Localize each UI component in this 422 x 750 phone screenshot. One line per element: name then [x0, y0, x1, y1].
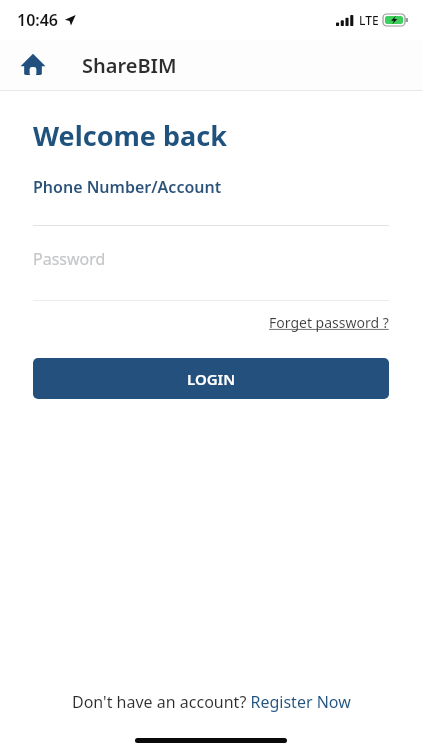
button[interactable]: Phone Number/Account [0, 176, 422, 226]
staticText: Password [33, 248, 106, 270]
button[interactable]: Forget password ? [269, 313, 389, 332]
button[interactable]: Home [12, 44, 54, 86]
button[interactable]: LOGIN [33, 358, 389, 399]
button[interactable]: Password [0, 248, 422, 301]
staticText: Welcome back [33, 117, 227, 154]
staticText: Phone Number/Account [33, 176, 222, 198]
staticText: Don't have an account? Register Now [72, 691, 351, 713]
staticText: LTE [359, 12, 379, 28]
staticText: LOGIN [187, 369, 236, 389]
button[interactable]: Don't have an account? Register Now [72, 691, 351, 713]
staticText: Forget password ? [269, 313, 389, 332]
staticText: ShareBIM [82, 52, 177, 79]
staticText: 10:46 [17, 9, 59, 31]
